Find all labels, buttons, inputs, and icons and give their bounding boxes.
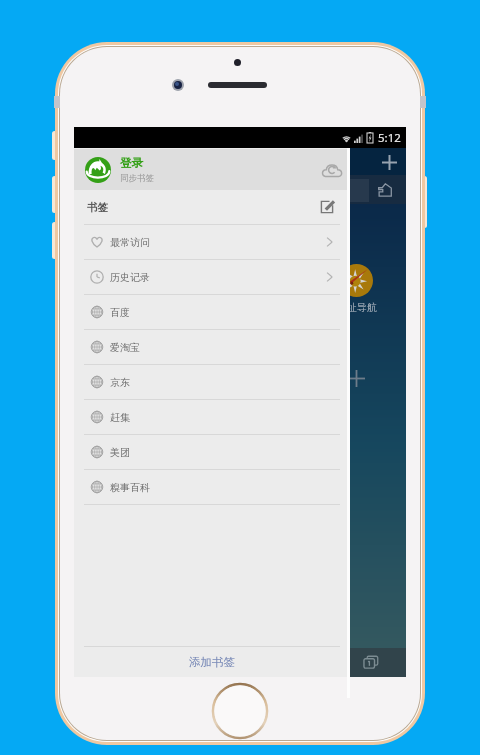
button[interactable]: 糗事百科 (74, 470, 350, 504)
staticText: 添加书签 (189, 655, 235, 669)
button[interactable]: 美团 (74, 435, 350, 469)
button[interactable]: 爱淘宝 (74, 330, 350, 364)
button[interactable]: 百度 (74, 295, 350, 329)
button[interactable]: 最常访问 (74, 225, 350, 259)
button[interactable]: 添加书签 (74, 647, 350, 677)
staticText: 书签 (87, 201, 108, 214)
staticText: 最常访问 (110, 236, 150, 249)
staticText: 网址导航 (333, 301, 381, 314)
button[interactable]: Edit bookmarks (314, 194, 340, 220)
staticText: 赶集 (110, 411, 130, 424)
staticText: 5:12 (378, 130, 401, 146)
button[interactable]: 京东 (74, 365, 350, 399)
button[interactable]: 历史记录 (74, 260, 350, 294)
staticText: 京东 (110, 376, 130, 389)
button[interactable]: Sync bookmarks (318, 156, 346, 184)
button[interactable]: 书签 (74, 190, 350, 224)
button[interactable]: 赶集 (74, 400, 350, 434)
button[interactable]: Tabs (357, 648, 385, 676)
button[interactable]: 登录 (74, 149, 350, 190)
button[interactable]: Add shortcut (340, 362, 373, 395)
button[interactable]: New tab (375, 148, 403, 176)
staticText: 糗事百科 (110, 481, 150, 494)
staticText: 百度 (110, 306, 130, 319)
staticText: 同步书签 (120, 173, 154, 184)
staticText: 爱淘宝 (110, 341, 140, 354)
button[interactable]: Home (372, 177, 398, 203)
staticText: 美团 (110, 446, 130, 459)
staticText: 登录 (120, 156, 143, 170)
staticText: 历史记录 (110, 271, 150, 284)
